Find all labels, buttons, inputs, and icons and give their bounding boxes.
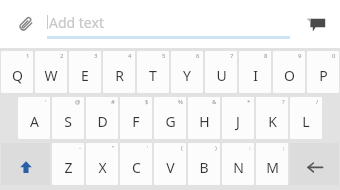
- staticText: F: [132, 112, 140, 131]
- staticText: :: [249, 144, 251, 152]
- button[interactable]: Add text: [47, 9, 290, 39]
- button[interactable]: 9: [273, 51, 305, 93]
- button[interactable]: 6: [171, 51, 203, 93]
- staticText: V: [166, 158, 175, 177]
- button[interactable]: 1: [1, 51, 33, 93]
- staticText: 3: [94, 52, 98, 60]
- staticText: D: [97, 112, 108, 131]
- button[interactable]: ?: [256, 97, 288, 139]
- staticText: Y: [183, 66, 191, 85]
- staticText: 1: [26, 52, 30, 60]
- staticText: K: [268, 112, 277, 131]
- staticText: O: [284, 66, 295, 85]
- staticText: ": [112, 144, 115, 152]
- staticText: -: [79, 144, 81, 152]
- button[interactable]: 7: [205, 51, 237, 93]
- button[interactable]: ;: [256, 143, 288, 185]
- button[interactable]: /: [290, 97, 322, 139]
- staticText: H: [199, 112, 210, 131]
- staticText: Q: [12, 66, 23, 85]
- staticText: ': [45, 98, 47, 106]
- staticText: A: [30, 112, 39, 131]
- button[interactable]: #: [86, 97, 118, 139]
- staticText: Add text: [49, 13, 104, 32]
- button[interactable]: 5: [137, 51, 169, 93]
- button[interactable]: *: [222, 97, 254, 139]
- staticText: G: [165, 112, 176, 131]
- staticText: ): [215, 144, 217, 152]
- staticText: B: [199, 158, 209, 177]
- button[interactable]: 0: [307, 51, 339, 93]
- staticText: R: [115, 66, 124, 85]
- button[interactable]: Attach file: [12, 10, 40, 38]
- staticText: *: [247, 98, 251, 106]
- staticText: I: [253, 66, 258, 85]
- staticText: E: [81, 66, 89, 85]
- button[interactable]: 8: [239, 51, 271, 93]
- staticText: X: [98, 158, 107, 177]
- staticText: &: [212, 98, 217, 106]
- button[interactable]: 3: [69, 51, 101, 93]
- staticText: 5: [162, 52, 166, 60]
- staticText: P: [319, 66, 328, 85]
- staticText: 2: [60, 52, 64, 60]
- staticText: 9: [298, 52, 302, 60]
- staticText: %: [178, 98, 183, 106]
- button[interactable]: Shift: [1, 143, 50, 185]
- button[interactable]: $: [120, 97, 152, 139]
- staticText: #: [111, 98, 115, 106]
- button[interactable]: -: [52, 143, 84, 185]
- staticText: 0: [332, 52, 336, 60]
- staticText: W: [44, 66, 58, 85]
- button[interactable]: 4: [103, 51, 135, 93]
- staticText: U: [216, 66, 227, 85]
- button[interactable]: 2: [35, 51, 67, 93]
- staticText: J: [236, 112, 240, 131]
- staticText: 7: [230, 52, 234, 60]
- button[interactable]: (: [154, 143, 186, 185]
- button[interactable]: &: [188, 97, 220, 139]
- staticText: Z: [64, 158, 73, 177]
- button[interactable]: ": [86, 143, 118, 185]
- staticText: ?: [282, 98, 285, 106]
- staticText: T: [149, 66, 157, 85]
- staticText: L: [302, 112, 310, 131]
- button[interactable]: @: [52, 97, 84, 139]
- button[interactable]: Backspace: [290, 143, 339, 185]
- button[interactable]: ': [120, 143, 152, 185]
- staticText: $: [145, 98, 149, 106]
- button[interactable]: ): [188, 143, 220, 185]
- button[interactable]: ': [18, 97, 50, 139]
- staticText: @: [75, 98, 81, 106]
- staticText: 4: [128, 52, 132, 60]
- staticText: ': [147, 144, 149, 152]
- button[interactable]: %: [154, 97, 186, 139]
- staticText: S: [64, 112, 72, 131]
- staticText: (: [181, 144, 183, 152]
- button[interactable]: :: [222, 143, 254, 185]
- button[interactable]: Send message: [302, 10, 330, 38]
- staticText: C: [132, 158, 141, 177]
- staticText: 8: [264, 52, 268, 60]
- staticText: ;: [283, 144, 285, 152]
- staticText: /: [316, 98, 319, 106]
- staticText: 6: [196, 52, 200, 60]
- staticText: N: [233, 158, 244, 177]
- staticText: M: [266, 158, 279, 177]
